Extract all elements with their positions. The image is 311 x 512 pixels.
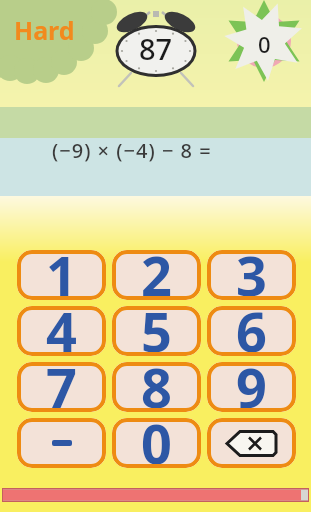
staticText: 6 [236, 306, 267, 356]
staticText: 4 [46, 306, 77, 356]
staticText: (−9) × (−4) − 8 = [52, 137, 212, 164]
staticText: 0 [258, 29, 271, 59]
staticText: 8 [141, 362, 172, 412]
staticText: 9 [236, 362, 267, 412]
staticText: 7 [46, 362, 77, 412]
staticText: Hard [14, 13, 75, 47]
staticText: 87 [139, 29, 173, 65]
staticText: 5 [141, 306, 172, 356]
staticText: 1 [46, 250, 77, 300]
staticText: 3 [236, 250, 267, 300]
staticText: 0 [141, 418, 172, 468]
staticText: 2 [141, 250, 172, 300]
